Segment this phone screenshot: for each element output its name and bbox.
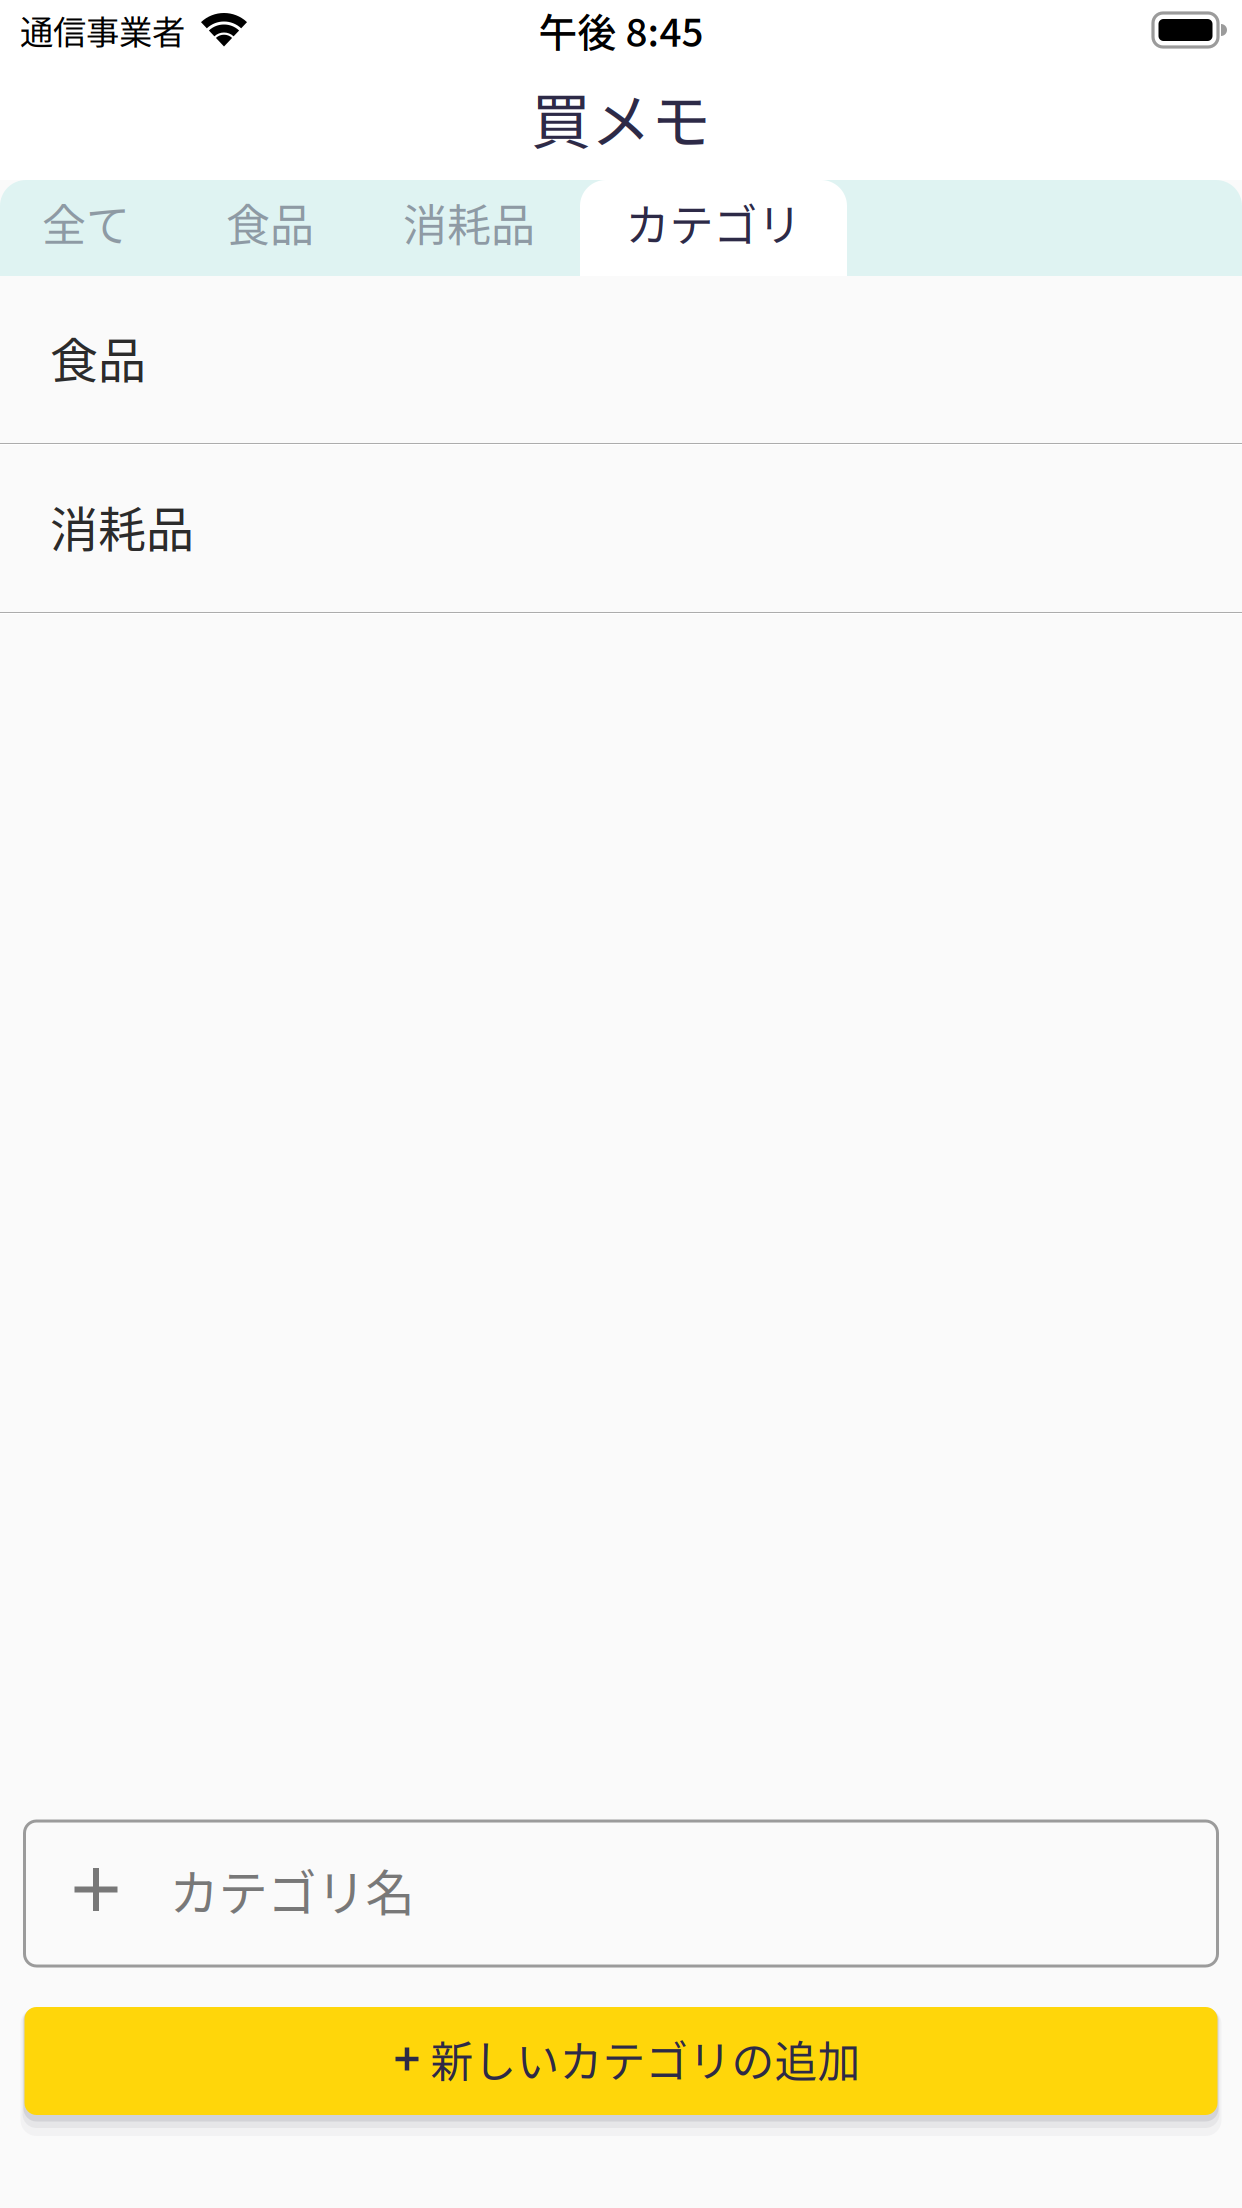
staticText: 通信事業者 bbox=[20, 6, 185, 54]
staticText: カテゴリ名 bbox=[169, 1854, 414, 1925]
staticText: 新しいカテゴリの追加 bbox=[430, 2028, 860, 2090]
staticText: 食品 bbox=[226, 191, 314, 254]
button[interactable]: 全て bbox=[0, 180, 182, 276]
staticText: 消耗品 bbox=[403, 191, 535, 254]
button[interactable]: カテゴリ名 bbox=[24, 1821, 1217, 1966]
staticText: カテゴリ bbox=[625, 191, 801, 254]
staticText: 消耗品 bbox=[50, 491, 194, 561]
button[interactable]: 食品 bbox=[0, 276, 1242, 443]
button[interactable]: 消耗品 bbox=[0, 445, 1242, 612]
button[interactable]: 食品 bbox=[182, 180, 358, 276]
staticText: 全て bbox=[42, 191, 130, 254]
staticText: 買メモ bbox=[531, 74, 711, 161]
button[interactable]: 消耗品 bbox=[358, 180, 580, 276]
button[interactable]: 新しいカテゴリの追加 bbox=[24, 2007, 1217, 2115]
staticText: 食品 bbox=[50, 322, 146, 392]
button[interactable]: カテゴリ bbox=[580, 180, 847, 276]
staticText: 午後 8:45 bbox=[538, 2, 703, 58]
